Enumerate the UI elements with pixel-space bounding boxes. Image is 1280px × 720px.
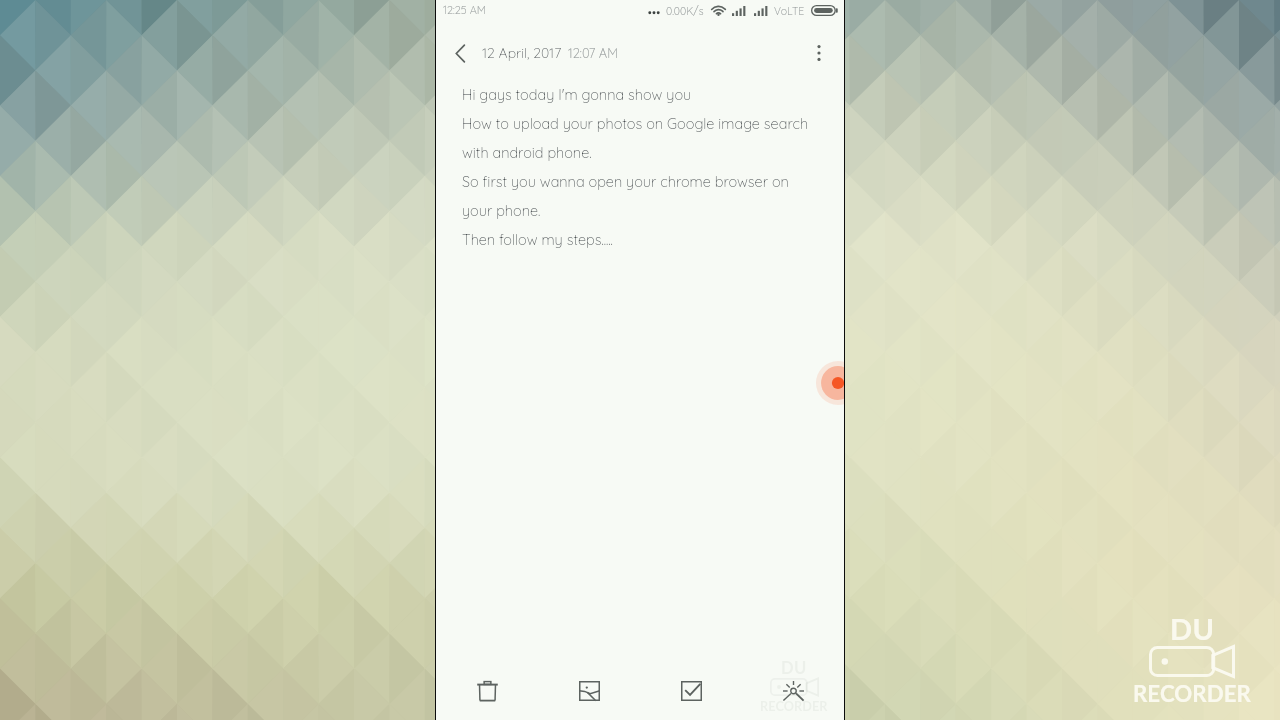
button[interactable]: Insert image <box>538 662 640 720</box>
staticText: with android phone. <box>462 143 592 161</box>
staticText: 12:25 AM <box>443 3 486 17</box>
staticText: 12:07 AM <box>568 45 619 61</box>
staticText: 12 April, 2017 <box>482 44 562 62</box>
staticText: Then follow my steps..... <box>462 230 613 248</box>
button[interactable]: Back <box>443 36 477 70</box>
staticText: your phone. <box>462 201 541 219</box>
staticText: RECORDER <box>760 698 828 713</box>
staticText: DU <box>781 658 807 678</box>
button[interactable]: Delete <box>436 662 538 720</box>
staticText: 0.00K/s <box>666 4 704 17</box>
button[interactable]: Checklist <box>640 662 742 720</box>
button[interactable]: Effects <box>742 662 844 720</box>
staticText: How to upload your photos on Google imag… <box>462 114 809 132</box>
staticText: RECORDER <box>1133 680 1251 707</box>
staticText: VoLTE <box>774 4 805 17</box>
staticText: So first you wanna open your chrome brow… <box>462 172 789 190</box>
staticText: Hi gays today I'm gonna show you <box>462 85 692 103</box>
staticText: DU <box>1170 611 1215 646</box>
button[interactable]: More options <box>802 36 836 70</box>
